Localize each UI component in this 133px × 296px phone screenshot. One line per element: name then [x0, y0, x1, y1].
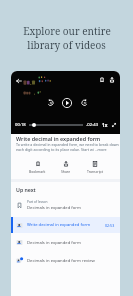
button[interactable]: Bookmark [26, 161, 49, 174]
button[interactable]: Play [62, 98, 72, 108]
staticText: 02:53 [105, 223, 115, 228]
staticText: Explore our entire [23, 24, 111, 38]
staticText: -02:43 [86, 122, 99, 128]
button[interactable]: Share [109, 77, 115, 83]
button[interactable]: Rewind 10 seconds [47, 99, 54, 106]
staticText: Decimals in expanded form [27, 240, 81, 246]
staticText: library of videos [27, 38, 106, 52]
button[interactable]: Fullscreen [111, 122, 117, 128]
staticText: Up next [16, 186, 36, 193]
staticText: Transcript [87, 169, 103, 174]
staticText: Write decimal in expanded form [27, 222, 91, 228]
staticText: 1x [102, 122, 108, 128]
staticText: Decimals in expanded form [27, 205, 81, 211]
button[interactable]: Decimals in expanded form [11, 234, 120, 251]
button[interactable]: Forward 10 seconds [81, 99, 88, 106]
staticText: Bookmark [29, 169, 46, 174]
staticText: To write a decimal in expanded form, we … [16, 142, 120, 152]
staticText: Decimals in expanded form review [27, 258, 95, 264]
button[interactable]: Part of lesson [11, 197, 120, 214]
button[interactable]: Back [15, 77, 23, 85]
staticText: Share [61, 169, 71, 174]
button[interactable]: Bookmark [99, 77, 105, 83]
button[interactable]: Share [58, 161, 74, 174]
staticText: Write decimal in expanded form [16, 135, 101, 142]
staticText: 00:18 [15, 122, 26, 128]
button[interactable]: Transcript [84, 161, 106, 174]
button[interactable]: Write decimal in expanded form [11, 217, 120, 233]
button[interactable]: Decimals in expanded form review [11, 252, 120, 269]
staticText: Part of lesson [27, 200, 48, 204]
